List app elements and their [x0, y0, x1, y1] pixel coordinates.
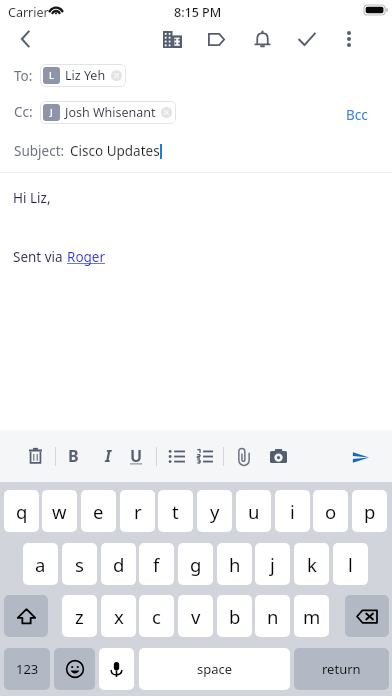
button[interactable]: Roger	[67, 248, 106, 266]
staticText: m	[303, 604, 321, 629]
button[interactable]: b	[217, 595, 252, 637]
staticText: 8:15 PM	[174, 4, 222, 21]
staticText: return	[322, 660, 361, 678]
staticText: k	[307, 552, 317, 577]
staticText: i	[290, 499, 295, 524]
staticText: h	[229, 552, 241, 577]
button[interactable]: d	[101, 543, 136, 585]
staticText: o	[325, 499, 337, 524]
button[interactable]: 123	[4, 648, 50, 690]
button[interactable]: Bold	[59, 442, 87, 470]
button[interactable]: y	[197, 490, 232, 532]
button[interactable]: v	[178, 595, 213, 637]
button[interactable]: m	[294, 595, 329, 637]
staticText: n	[267, 604, 279, 629]
button[interactable]: n	[255, 595, 290, 637]
staticText: y	[210, 499, 220, 524]
staticText: Sent via	[13, 248, 67, 266]
staticText: To:	[14, 67, 33, 85]
staticText: u	[248, 499, 260, 524]
staticText: Cc:	[14, 103, 33, 121]
button[interactable]: Done	[292, 24, 322, 54]
staticText: l	[348, 552, 353, 577]
button[interactable]: a	[23, 543, 58, 585]
staticText: 123	[16, 660, 39, 678]
staticText: J	[50, 106, 53, 119]
button[interactable]: i	[275, 490, 310, 532]
button[interactable]: c	[139, 595, 174, 637]
staticText: c	[152, 604, 161, 629]
staticText: Subject:	[14, 142, 65, 160]
button[interactable]: q	[4, 490, 39, 532]
staticText: q	[16, 499, 28, 524]
button[interactable]: Backspace	[345, 595, 389, 637]
staticText: Bcc	[346, 106, 368, 124]
staticText: j	[270, 552, 275, 577]
button[interactable]: p	[352, 490, 387, 532]
button[interactable]: Bcc	[338, 102, 376, 128]
button[interactable]: Company	[157, 24, 187, 54]
staticText: b	[229, 604, 241, 629]
button[interactable]: l	[333, 543, 368, 585]
staticText: p	[364, 499, 376, 524]
button[interactable]: z	[62, 595, 97, 637]
staticText: d	[113, 552, 125, 577]
staticText: g	[190, 552, 202, 577]
button[interactable]: Delete	[20, 441, 50, 471]
staticText: U	[130, 445, 143, 467]
button[interactable]: o	[313, 490, 348, 532]
button[interactable]: Attach	[229, 441, 259, 471]
button[interactable]: f	[139, 543, 174, 585]
button[interactable]: J	[40, 101, 176, 124]
button[interactable]: More options	[334, 24, 364, 54]
button[interactable]: Shift	[4, 595, 48, 637]
button[interactable]: j	[255, 543, 290, 585]
button[interactable]: w	[42, 490, 77, 532]
staticText: a	[35, 552, 46, 577]
button[interactable]: Bulleted list	[162, 441, 192, 471]
staticText: Josh Whisenant	[65, 104, 156, 121]
button[interactable]: Numbered list	[190, 441, 220, 471]
button[interactable]: Underline	[122, 442, 150, 470]
staticText: x	[114, 604, 124, 629]
button[interactable]: Notifications	[247, 24, 277, 54]
button[interactable]: s	[62, 543, 97, 585]
button[interactable]: u	[236, 490, 271, 532]
button[interactable]: x	[101, 595, 136, 637]
button[interactable]: t	[158, 490, 193, 532]
staticText: z	[75, 604, 84, 629]
button[interactable]: Italic	[94, 442, 122, 470]
staticText: v	[191, 604, 201, 629]
staticText: I	[105, 445, 112, 467]
button[interactable]: L	[40, 64, 126, 87]
staticText: w	[52, 499, 67, 524]
button[interactable]: k	[294, 543, 329, 585]
staticText: r	[134, 499, 142, 524]
staticText: s	[75, 552, 84, 577]
staticText: f	[153, 552, 160, 577]
staticText: Liz Yeh	[65, 67, 106, 84]
button[interactable]: e	[81, 490, 116, 532]
button[interactable]: Dictate	[99, 648, 134, 690]
button[interactable]: space	[139, 648, 290, 690]
staticText: Hi Liz,	[13, 189, 51, 207]
button[interactable]: Camera	[263, 441, 293, 471]
staticText: L	[49, 69, 55, 82]
button[interactable]: Send	[345, 441, 375, 471]
staticText: Cisco Updates	[70, 142, 160, 160]
staticText: e	[93, 499, 104, 524]
staticText: B	[68, 445, 79, 467]
button[interactable]: Back	[10, 24, 40, 54]
button[interactable]: g	[178, 543, 213, 585]
button[interactable]: Emoji	[54, 648, 95, 690]
button[interactable]: return	[294, 648, 389, 690]
staticText: t	[172, 499, 179, 524]
staticText: Carrier	[8, 4, 49, 21]
staticText: space	[197, 660, 233, 678]
button[interactable]: r	[120, 490, 155, 532]
button[interactable]: Label	[201, 24, 231, 54]
button[interactable]: h	[217, 543, 252, 585]
